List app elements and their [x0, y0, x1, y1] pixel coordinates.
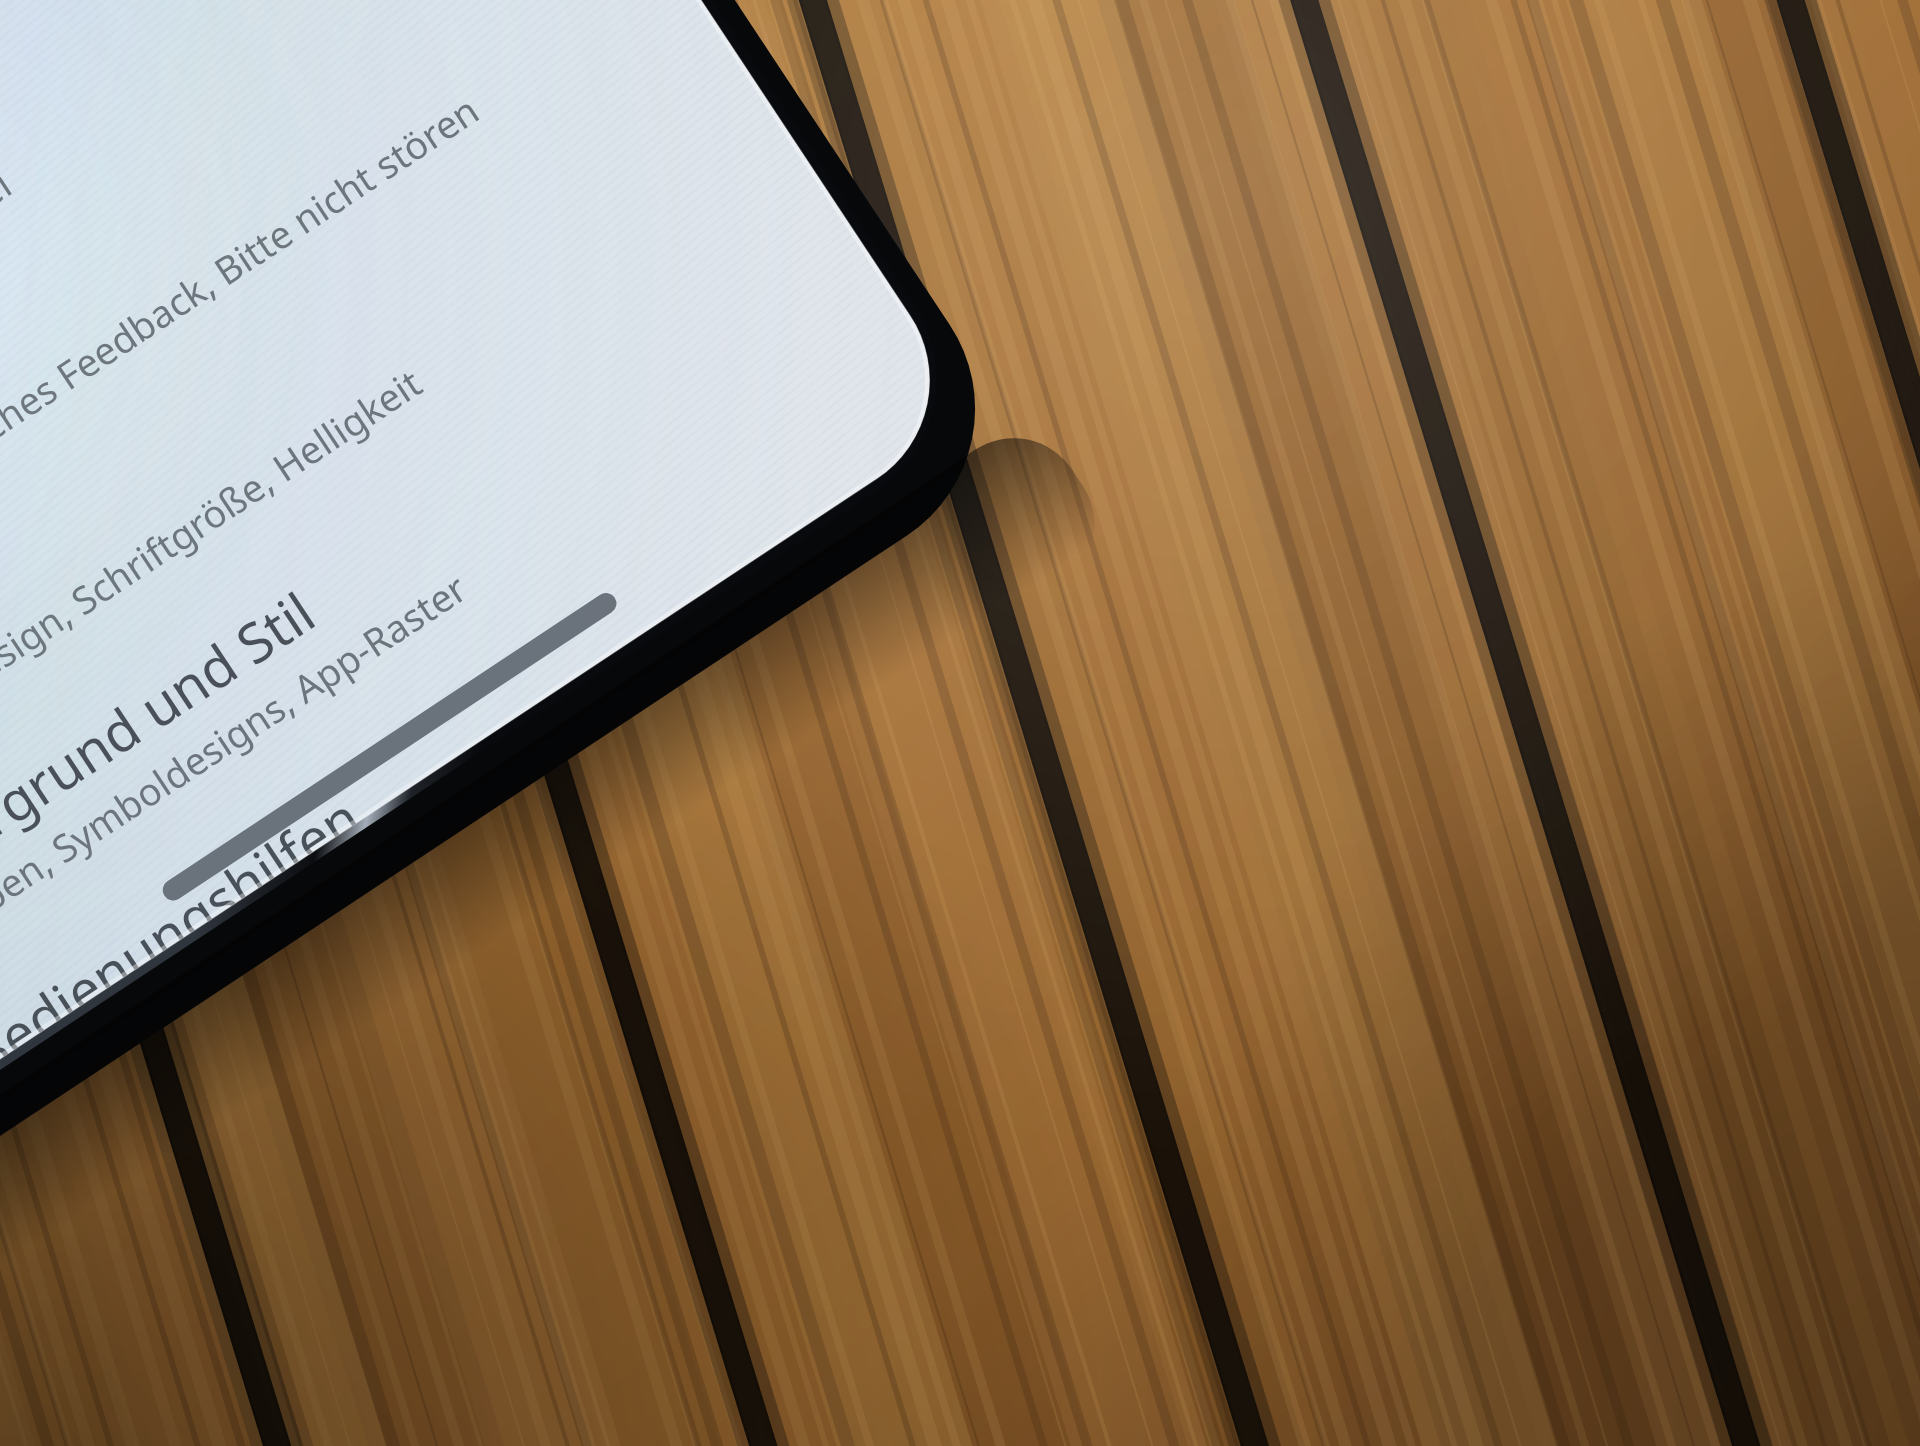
- button[interactable]: Home gesture: [840, 480, 970, 506]
- button[interactable]: Speicher: [0, 135, 1190, 270]
- button[interactable]: Hintergrund und Stil: [0, 540, 1190, 675]
- button[interactable]: Display: [0, 405, 1190, 540]
- button[interactable]: Akku: [0, 0, 1190, 135]
- button[interactable]: Bedienungshilfen: [0, 675, 1190, 810]
- button[interactable]: Ton & Vibration: [0, 270, 1190, 405]
